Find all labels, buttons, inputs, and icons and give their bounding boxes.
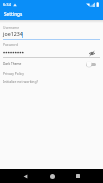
button[interactable]: Show password [87, 48, 97, 58]
staticText: Settings [4, 11, 23, 17]
staticText: joe1234 [3, 30, 23, 37]
button[interactable]: Back [15, 169, 35, 183]
staticText: Dark Theme [3, 62, 22, 66]
staticText: Username [3, 25, 20, 29]
button[interactable]: Initialize not working? [3, 79, 38, 84]
staticText: 6:34 [3, 2, 11, 7]
button[interactable]: Home [42, 169, 62, 183]
button[interactable]: Recents [68, 169, 88, 183]
button[interactable]: Privacy Policy [3, 71, 24, 75]
button[interactable]: Dark Theme [0, 59, 103, 68]
staticText: Password [3, 42, 18, 46]
